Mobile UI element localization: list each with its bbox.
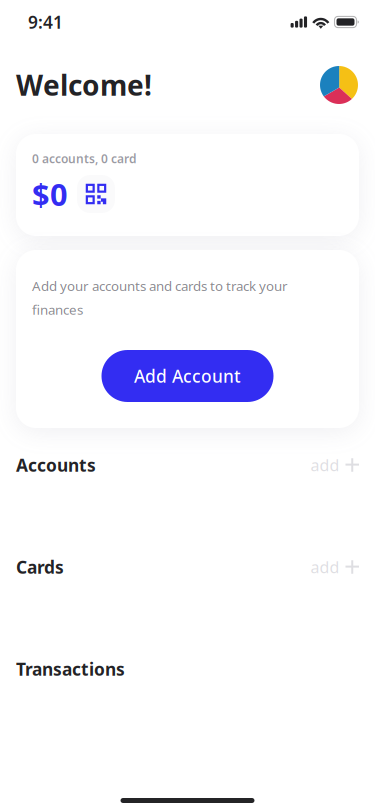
button[interactable]: add <box>296 548 359 586</box>
staticText: 9:41 <box>28 10 63 33</box>
button[interactable]: Profile <box>320 66 358 104</box>
staticText: Transactions <box>16 657 125 680</box>
staticText: $0 <box>32 174 68 214</box>
staticText: add <box>310 454 339 476</box>
staticText: add <box>310 556 339 578</box>
staticText: Add Account <box>134 364 241 387</box>
staticText: Accounts <box>16 453 96 476</box>
staticText: Cards <box>16 555 64 578</box>
button[interactable]: Scan QR code <box>77 175 115 213</box>
staticText: 0 accounts, 0 card <box>32 150 137 166</box>
button[interactable]: Add Account <box>101 350 273 402</box>
button[interactable]: add <box>296 446 359 484</box>
staticText: Add your accounts and cards to track you… <box>32 277 288 318</box>
staticText: Welcome! <box>16 66 152 104</box>
